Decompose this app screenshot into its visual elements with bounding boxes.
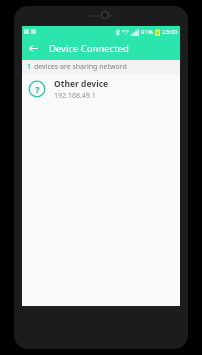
staticText: 192.168.49.1 [54, 91, 96, 101]
staticText: Other device [54, 78, 109, 90]
staticText: devices are sharing netword [34, 62, 127, 72]
staticText: 91% [141, 28, 153, 36]
staticText: Device Connected [49, 42, 129, 55]
staticText: 23:00 [162, 28, 178, 36]
staticText: ? [35, 83, 40, 95]
button[interactable]: ? [22, 74, 180, 104]
button[interactable]: Back [22, 37, 45, 60]
staticText: 1 [27, 62, 32, 72]
